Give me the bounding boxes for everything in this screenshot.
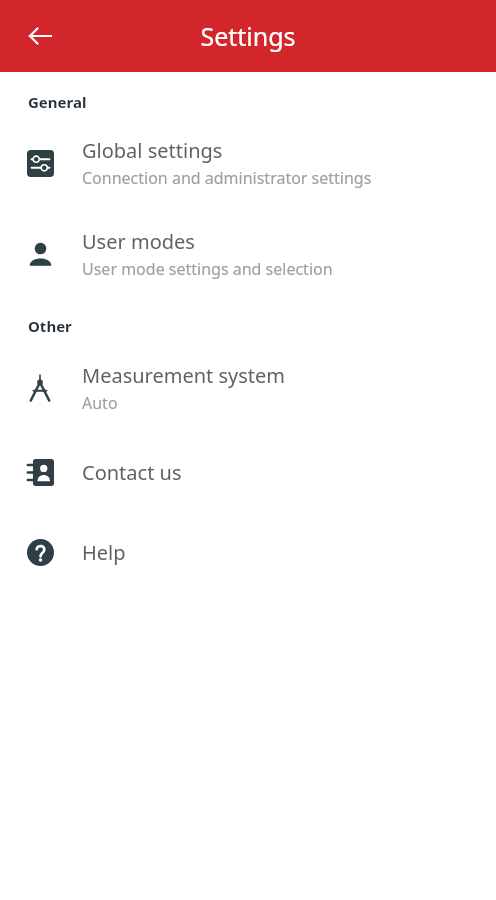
- staticText: User mode settings and selection: [82, 258, 333, 280]
- button[interactable]: Contact us: [0, 454, 496, 490]
- button[interactable]: Measurement system: [0, 362, 496, 414]
- staticText: Measurement system: [82, 362, 286, 389]
- button[interactable]: Help: [0, 534, 496, 570]
- staticText: Connection and administrator settings: [82, 167, 372, 189]
- staticText: Auto: [82, 392, 118, 414]
- staticText: Contact us: [82, 459, 182, 486]
- staticText: Settings: [200, 19, 296, 53]
- button[interactable]: User modes: [0, 228, 496, 280]
- button[interactable]: Back: [18, 14, 62, 58]
- staticText: General: [28, 92, 87, 112]
- staticText: Other: [28, 316, 72, 336]
- staticText: User modes: [82, 228, 195, 255]
- button[interactable]: Global settings: [0, 137, 496, 189]
- staticText: Help: [82, 539, 126, 566]
- staticText: Global settings: [82, 137, 223, 164]
